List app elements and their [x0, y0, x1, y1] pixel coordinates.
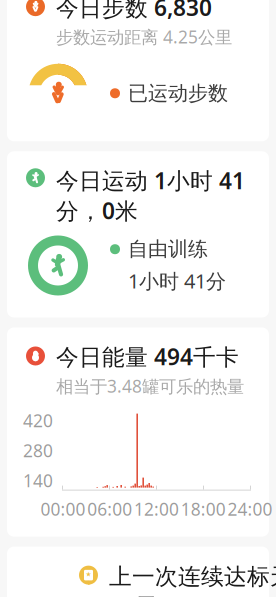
- staticText: 280: [23, 439, 53, 462]
- staticText: 18:00: [181, 498, 226, 521]
- staticText: 今日能量 494千卡: [56, 341, 239, 372]
- staticText: 140: [23, 469, 53, 492]
- staticText: 06:00: [87, 498, 132, 521]
- staticText: 1小时 41分: [128, 267, 226, 294]
- staticText: ★: [85, 570, 91, 578]
- staticText: 步数运动距离 4.25公里: [56, 25, 232, 48]
- staticText: 00:00: [40, 498, 85, 521]
- staticText: 24:00: [227, 498, 272, 521]
- staticText: 已运动步数: [128, 81, 228, 106]
- staticText: 相当于3.48罐可乐的热量: [56, 375, 244, 398]
- staticText: 今日运动 1小时 41分，0米: [56, 165, 245, 225]
- staticText: 420: [23, 409, 53, 432]
- staticText: 自由训练: [128, 237, 208, 261]
- staticText: 上一次连续达标天数 10天: [109, 561, 276, 597]
- staticText: 12:00: [134, 498, 179, 521]
- staticText: 今日步数 6,830: [56, 0, 218, 22]
